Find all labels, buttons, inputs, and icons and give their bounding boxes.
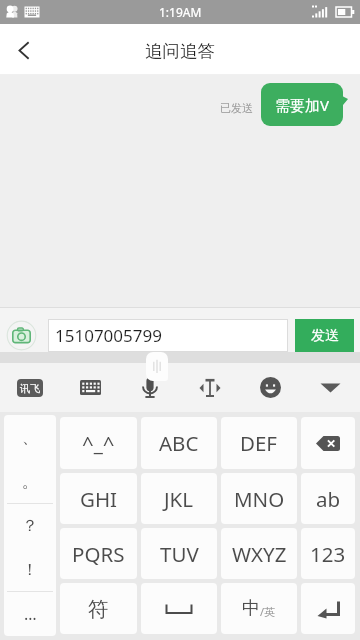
staticText: 。 xyxy=(22,472,38,492)
button[interactable]: … xyxy=(4,592,56,636)
button[interactable]: 。 xyxy=(4,460,56,504)
button[interactable]: MNO xyxy=(221,473,297,524)
button[interactable]: Voice input xyxy=(120,363,180,412)
button[interactable]: 15107005799 xyxy=(48,319,288,352)
button[interactable]: Keyboard xyxy=(60,363,120,412)
button[interactable]: GHI xyxy=(60,473,137,524)
staticText: ？ xyxy=(22,516,38,536)
button[interactable]: 符 xyxy=(60,583,137,634)
button[interactable]: ^_^ xyxy=(60,417,137,469)
staticText: JKL xyxy=(164,485,194,513)
button[interactable]: 中 xyxy=(221,583,297,634)
staticText: ^_^ xyxy=(82,429,115,457)
staticText: /英 xyxy=(260,604,276,619)
staticText: PQRS xyxy=(72,540,125,568)
button[interactable]: ab xyxy=(301,473,355,524)
staticText: 、 xyxy=(22,428,38,448)
button[interactable]: Emoji xyxy=(240,363,300,412)
button[interactable]: ！ xyxy=(4,548,56,592)
button[interactable] xyxy=(141,583,217,634)
button[interactable]: Input method xyxy=(0,363,60,412)
button[interactable]: JKL xyxy=(141,473,217,524)
staticText: DEF xyxy=(240,429,278,457)
staticText: 追问追答 xyxy=(145,40,215,62)
button[interactable]: 、 xyxy=(4,415,56,460)
staticText: GHI xyxy=(80,485,118,513)
button[interactable]: ABC xyxy=(141,417,217,469)
button[interactable]: TUV xyxy=(141,528,217,579)
staticText: ！ xyxy=(22,560,38,580)
staticText: MNO xyxy=(234,485,285,513)
staticText: 需要加V xyxy=(275,95,330,115)
button[interactable]: del xyxy=(301,417,355,469)
staticText: 123 xyxy=(310,540,346,568)
button[interactable]: Hide keyboard xyxy=(300,363,360,412)
staticText: 中 xyxy=(242,597,260,620)
staticText: 讯飞 xyxy=(20,382,40,395)
staticText: … xyxy=(24,603,37,625)
button[interactable]: 发送 xyxy=(295,319,354,352)
staticText: 1:19AM xyxy=(159,4,202,20)
staticText: ab xyxy=(316,485,341,513)
button[interactable]: 需要加V xyxy=(261,83,343,126)
button[interactable]: WXYZ xyxy=(221,528,297,579)
staticText: 15107005799 xyxy=(55,324,162,347)
staticText: 发送 xyxy=(311,327,339,345)
button[interactable]: DEF xyxy=(221,417,297,469)
button[interactable]: Back xyxy=(0,26,48,74)
button[interactable]: Camera xyxy=(6,320,37,351)
button[interactable]: PQRS xyxy=(60,528,137,579)
staticText: TUV xyxy=(160,540,199,568)
button[interactable]: 123 xyxy=(301,528,355,579)
staticText: 符 xyxy=(88,596,109,622)
staticText: ABC xyxy=(159,429,199,457)
button[interactable]: Cursor xyxy=(180,363,240,412)
staticText: 已发送 xyxy=(220,101,253,115)
button[interactable]: ？ xyxy=(4,504,56,548)
button[interactable]: enter xyxy=(301,583,355,634)
staticText: WXYZ xyxy=(232,540,287,568)
